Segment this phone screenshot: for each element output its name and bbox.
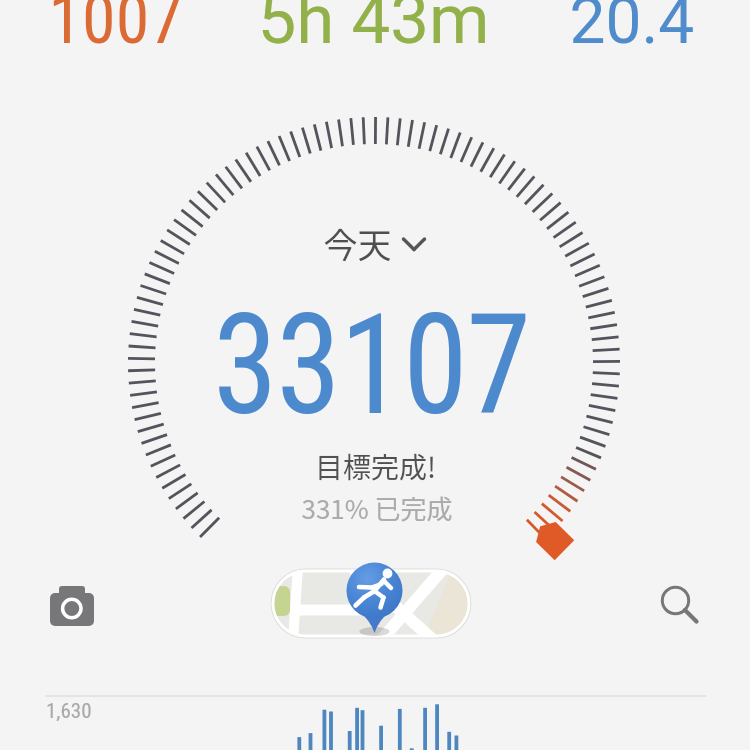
button[interactable] bbox=[272, 570, 470, 637]
button[interactable] bbox=[320, 220, 435, 266]
button[interactable] bbox=[40, 578, 104, 634]
button[interactable] bbox=[648, 576, 708, 634]
